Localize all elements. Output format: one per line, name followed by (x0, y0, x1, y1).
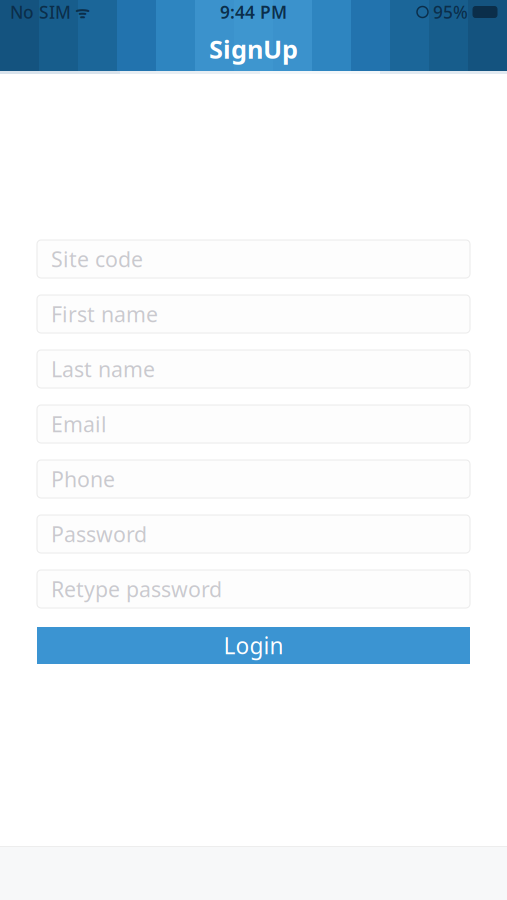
button[interactable]: Last name (37, 350, 470, 388)
staticText: Last name (51, 355, 155, 383)
staticText: First name (51, 300, 158, 328)
staticText: Email (51, 410, 107, 438)
button[interactable]: Login (37, 627, 470, 664)
staticText: No SIM (10, 0, 71, 23)
staticText: Phone (51, 465, 115, 493)
staticText: 9:44 PM (220, 0, 287, 23)
button[interactable]: Phone (37, 460, 470, 498)
staticText: Retype password (51, 575, 222, 603)
staticText: ᯤ (71, 1, 90, 23)
button[interactable]: Retype password (37, 570, 470, 608)
button[interactable]: Password (37, 515, 470, 553)
staticText: SignUp (209, 32, 298, 66)
staticText: 95% (433, 0, 468, 23)
staticText: Site code (51, 245, 143, 273)
button[interactable]: First name (37, 295, 470, 333)
staticText: Password (51, 520, 147, 548)
staticText: Login (223, 630, 283, 660)
button[interactable]: Site code (37, 240, 470, 278)
button[interactable]: Email (37, 405, 470, 443)
